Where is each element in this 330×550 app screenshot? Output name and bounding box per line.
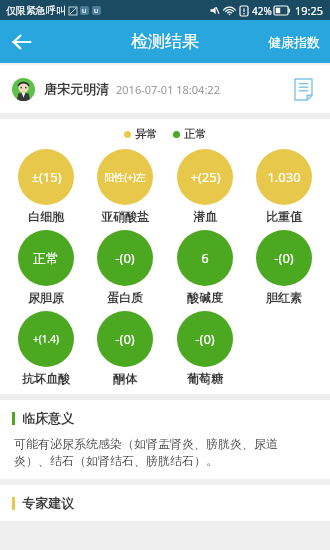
staticText: -(0) <box>115 249 135 267</box>
button[interactable]: 1.030 <box>250 149 318 224</box>
staticText: 唐宋元明清 <box>44 81 109 97</box>
button[interactable]: -(0) <box>171 311 239 386</box>
staticText: 抗坏血酸 <box>22 371 70 386</box>
button[interactable]: -(0) <box>91 230 159 305</box>
staticText: 2016-07-01 18:04:22 <box>116 82 220 97</box>
button[interactable]: +(25) <box>171 149 239 224</box>
button[interactable]: -(0) <box>250 230 318 305</box>
button[interactable]: Report <box>288 74 318 104</box>
staticText: 仅限紧急呼叫 <box>6 4 66 17</box>
staticText: 比重值 <box>266 209 302 224</box>
staticText: 尿胆原 <box>28 290 64 305</box>
staticText: 42% <box>252 4 272 18</box>
staticText: 葡萄糖 <box>187 371 223 386</box>
staticText: 酸碱度 <box>187 290 223 305</box>
staticText: 1.030 <box>267 168 301 186</box>
button[interactable]: 阳性(+)左 <box>91 149 159 224</box>
staticText: 蛋白质 <box>107 290 143 305</box>
staticText: -(0) <box>115 330 135 348</box>
staticText: 6 <box>201 249 209 267</box>
staticText: 正常 <box>33 250 59 266</box>
button[interactable]: 健康指数 <box>258 20 330 63</box>
button[interactable]: +(1.4) <box>12 311 80 386</box>
staticText: +(25) <box>190 168 221 186</box>
staticText: 潜血 <box>193 209 217 224</box>
staticText: 19:25 <box>295 3 324 18</box>
button[interactable]: Back <box>0 20 44 63</box>
staticText: 专家建议 <box>22 495 74 511</box>
staticText: 异常 <box>135 127 157 141</box>
staticText: 可能有泌尿系统感染（如肾盂肾炎、膀胱炎、尿道 炎）、结石（如肾结石、膀胱结石）。 <box>14 436 278 469</box>
staticText: 阳性(+)左 <box>104 170 146 184</box>
staticText: -(0) <box>195 330 215 348</box>
button[interactable]: 6 <box>171 230 239 305</box>
staticText: U <box>82 7 87 15</box>
staticText: +(1.4) <box>33 332 59 346</box>
button[interactable]: 正常 <box>12 230 80 305</box>
staticText: -(0) <box>274 249 294 267</box>
staticText: 检测结果 <box>131 31 199 52</box>
button[interactable]: ±(15) <box>12 149 80 224</box>
staticText: 酮体 <box>113 371 137 386</box>
staticText: ±(15) <box>31 168 62 186</box>
button[interactable]: 唐宋元明清 <box>0 65 330 113</box>
staticText: 胆红素 <box>266 290 302 305</box>
staticText: 临床意义 <box>22 410 74 426</box>
staticText: 亚硝酸盐 <box>101 209 149 224</box>
staticText: 白细胞 <box>28 209 64 224</box>
button[interactable]: -(0) <box>91 311 159 386</box>
staticText: 正常 <box>184 127 206 141</box>
staticText: 健康指数 <box>268 34 320 50</box>
staticText: U <box>94 7 99 15</box>
